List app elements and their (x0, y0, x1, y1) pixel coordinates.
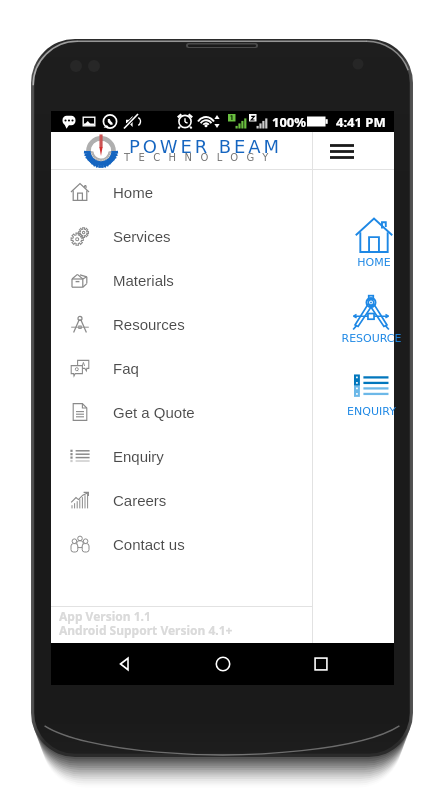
button[interactable]: Get a Quote (51, 390, 312, 434)
staticText: App Version 1.1 (59, 608, 151, 624)
staticText: Faq (113, 360, 139, 377)
button[interactable]: Home (51, 170, 312, 214)
staticText: Careers (113, 492, 167, 509)
staticText: POWER BEAM (129, 136, 282, 157)
button[interactable]: ENQUIRY (323, 366, 419, 418)
staticText: 4:41 PM (336, 113, 386, 131)
button[interactable]: Materials (51, 258, 312, 302)
staticText: 100% (272, 113, 307, 131)
button[interactable]: Careers (51, 478, 312, 522)
staticText: Home (113, 184, 154, 201)
button[interactable]: Recents (296, 643, 346, 685)
button[interactable]: Faq (51, 346, 312, 390)
staticText: Get a Quote (113, 404, 195, 421)
button[interactable]: Enquiry (51, 434, 312, 478)
staticText: HOME (357, 256, 391, 269)
staticText: Materials (113, 272, 174, 289)
button[interactable]: RESOURCE (323, 293, 419, 345)
button[interactable]: Services (51, 214, 312, 258)
staticText: Enquiry (113, 448, 164, 465)
staticText: Resources (113, 316, 185, 333)
staticText: Contact us (113, 536, 185, 553)
staticText: ENQUIRY (347, 405, 396, 418)
button[interactable]: Menu (313, 132, 371, 170)
staticText: TECHNOLOGY (124, 152, 277, 164)
button[interactable]: Contact us (51, 522, 312, 566)
staticText: Services (113, 228, 171, 245)
staticText: Android Support Version 4.1+ (59, 622, 233, 638)
button[interactable]: Back (99, 643, 149, 685)
staticText: RESOURCE (341, 332, 402, 345)
button[interactable]: HOME (326, 217, 422, 269)
button[interactable]: Resources (51, 302, 312, 346)
button[interactable]: Home (198, 643, 248, 685)
